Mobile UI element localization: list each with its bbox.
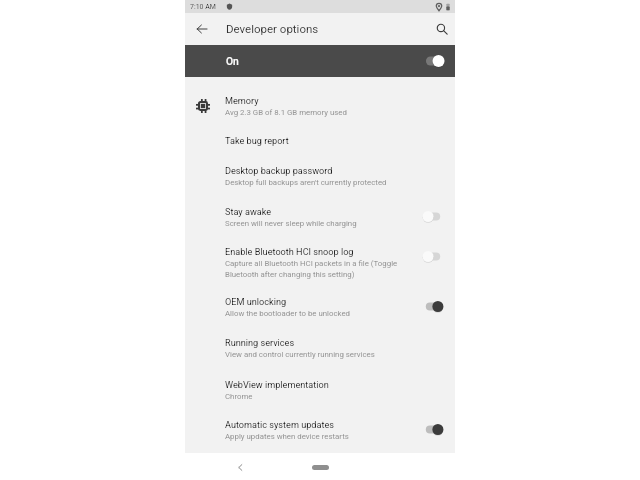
button[interactable]: Search	[426, 13, 458, 45]
staticText: Avg 2.3 GB of 8.1 GB memory used	[225, 108, 347, 117]
button[interactable]: Automatic system updates toggle	[423, 424, 443, 435]
staticText: Chrome	[225, 392, 253, 401]
button[interactable]: Enable Bluetooth HCI snoop log	[185, 228, 455, 278]
button[interactable]: OEM unlocking toggle	[423, 301, 443, 312]
button[interactable]: OEM unlocking	[185, 278, 455, 319]
staticText: Take bug report	[225, 136, 289, 147]
staticText: View and control currently running servi…	[225, 350, 375, 359]
staticText: Apply updates when device restarts	[225, 432, 349, 441]
staticText: Screen will never sleep while charging	[225, 219, 357, 228]
button[interactable]: On	[185, 45, 455, 77]
button[interactable]: Back	[186, 13, 218, 45]
button[interactable]: Stay awake	[185, 188, 455, 228]
staticText: Enable Bluetooth HCI snoop log	[225, 247, 354, 258]
button[interactable]: Memory	[185, 77, 455, 117]
button[interactable]: Automatic system updates	[185, 401, 455, 441]
staticText: Capture all Bluetooth HCI packets in a f…	[225, 259, 398, 268]
staticText: Desktop full backups aren't currently pr…	[225, 178, 387, 187]
staticText: Bluetooth after changing this setting)	[225, 270, 355, 279]
staticText: Allow the bootloader to be unlocked	[225, 309, 351, 318]
button[interactable]: Enable Bluetooth HCI snoop log toggle	[423, 251, 443, 262]
button[interactable]: Stay awake toggle	[423, 211, 443, 222]
staticText: WebView implementation	[225, 380, 329, 391]
staticText: Stay awake	[225, 207, 272, 218]
staticText: Desktop backup password	[225, 166, 333, 177]
staticText: On	[226, 55, 239, 67]
staticText: Developer options	[226, 22, 319, 35]
button[interactable]: Back	[230, 457, 250, 477]
staticText: Memory	[225, 96, 259, 107]
staticText: 7:10 AM	[190, 3, 216, 11]
staticText: OEM unlocking	[225, 297, 287, 308]
button[interactable]: Desktop backup password	[185, 147, 455, 188]
button[interactable]: Home	[298, 457, 342, 477]
button[interactable]: Take bug report	[185, 117, 455, 147]
button[interactable]: Running services	[185, 319, 455, 361]
staticText: Automatic system updates	[225, 420, 335, 431]
button[interactable]: WebView implementation	[185, 361, 455, 401]
staticText: Running services	[225, 338, 295, 349]
